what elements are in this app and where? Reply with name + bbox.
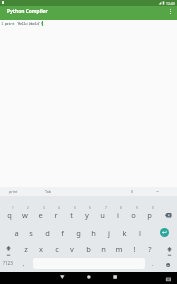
button[interactable]: m [113, 243, 125, 255]
button[interactable]: u [96, 209, 108, 221]
button[interactable]: Python Compiler [0, 6, 177, 20]
button[interactable]: ! [128, 243, 140, 255]
staticText: ! [133, 244, 136, 254]
staticText: 1 [12, 206, 14, 210]
staticText: q [7, 210, 12, 220]
button[interactable]: g [72, 227, 84, 239]
staticText: 2 [27, 206, 29, 210]
staticText: c [55, 244, 59, 254]
button[interactable]: z [20, 243, 32, 255]
staticText: s [29, 228, 33, 238]
staticText: 8 [120, 206, 122, 210]
staticText: m [115, 244, 123, 254]
staticText: h [91, 228, 96, 238]
button[interactable]: w [19, 209, 31, 221]
button[interactable]: k [118, 227, 130, 239]
staticText: d [45, 228, 50, 238]
button[interactable]: n [97, 243, 109, 255]
staticText: t [70, 210, 73, 220]
staticText: l [139, 228, 141, 238]
button[interactable] [59, 272, 118, 284]
button[interactable]: b [82, 243, 94, 255]
button[interactable]: v [66, 243, 78, 255]
staticText: 1 print 'Hello World'! [1, 21, 42, 27]
button[interactable]: f [56, 227, 68, 239]
staticText: n [101, 244, 106, 254]
staticText: e [38, 210, 43, 220]
staticText: z [24, 244, 28, 254]
button[interactable]: e [34, 209, 46, 221]
staticText: 4 [58, 206, 60, 210]
staticText: u [100, 210, 105, 220]
button[interactable]: x [35, 243, 47, 255]
staticText: r [54, 210, 58, 220]
button[interactable]: o [127, 209, 139, 221]
button[interactable] [6, 246, 11, 256]
button[interactable]: i [112, 209, 124, 221]
staticText: 12:43 [166, 1, 175, 6]
button[interactable] [160, 228, 169, 237]
button[interactable]: 1 print 'Hello World'! [0, 20, 177, 188]
staticText: Python Compiler [7, 8, 48, 15]
button[interactable]: y [81, 209, 93, 221]
button[interactable]: ? [144, 243, 156, 255]
button[interactable]: () [131, 189, 134, 194]
button[interactable]: l [134, 227, 146, 239]
staticText: 9 [136, 206, 138, 210]
staticText: y [85, 210, 89, 220]
staticText: x [39, 244, 43, 254]
button[interactable] [165, 213, 172, 218]
button[interactable]: s [25, 227, 37, 239]
staticText: 5 [74, 206, 76, 210]
button[interactable]: print [9, 189, 18, 194]
button[interactable] [167, 247, 172, 256]
button[interactable]: h [87, 227, 99, 239]
button[interactable] [118, 272, 177, 284]
staticText: a [14, 228, 19, 238]
staticText: i [117, 210, 119, 220]
staticText: f [61, 228, 64, 238]
staticText: o [131, 210, 136, 220]
staticText: k [122, 228, 127, 238]
button[interactable]: r [50, 209, 62, 221]
staticText: 7 [105, 206, 107, 210]
staticText: j [108, 228, 110, 238]
button[interactable]: p [143, 209, 155, 221]
button[interactable]: c [51, 243, 63, 255]
staticText: b [86, 244, 91, 254]
staticText: 6 [89, 206, 91, 210]
button[interactable]: t [65, 209, 77, 221]
button[interactable]: "" [156, 190, 160, 195]
staticText: w [22, 210, 28, 220]
button[interactable]: , [23, 260, 25, 268]
button[interactable]: j [103, 227, 115, 239]
button[interactable]: q [3, 209, 15, 221]
button[interactable]: Tab [45, 189, 52, 194]
staticText: g [76, 228, 81, 238]
staticText: 0 [152, 206, 154, 210]
button[interactable]: a [10, 227, 22, 239]
button[interactable] [166, 263, 170, 267]
button[interactable]: . [152, 260, 154, 268]
staticText: 3 [43, 206, 45, 210]
button[interactable]: ?123 [3, 260, 13, 266]
staticText: p [147, 210, 152, 220]
button[interactable]: d [41, 227, 53, 239]
staticText: v [70, 244, 74, 254]
staticText: ? [148, 244, 152, 254]
button[interactable] [170, 9, 171, 14]
